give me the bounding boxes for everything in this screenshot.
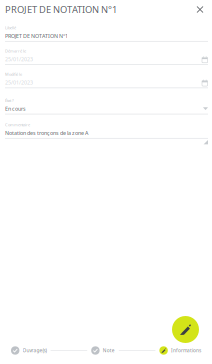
staticText: Note	[103, 347, 115, 354]
button[interactable]: Modifier	[172, 316, 199, 343]
staticText: Modifié le	[5, 71, 22, 77]
staticText: En cours	[5, 105, 26, 112]
staticText: PROJET DE NOTATION N°1	[5, 32, 68, 40]
button[interactable]: Note	[91, 346, 115, 355]
staticText: Démarré le	[5, 48, 26, 54]
staticText: Notation des tronçons de la zone A	[5, 129, 88, 137]
staticText: État ?	[5, 98, 14, 103]
staticText: Libellé	[5, 25, 16, 30]
staticText: Commentaire	[5, 122, 30, 127]
staticText: Ouvrage(s)	[23, 347, 47, 354]
button[interactable]: Ouvrage(s)	[11, 346, 47, 355]
button[interactable]: Informations	[159, 346, 201, 355]
staticText: 25/01/2023	[5, 79, 33, 86]
button[interactable]: Fermer	[193, 2, 207, 16]
staticText: 25/01/2023	[5, 56, 33, 63]
staticText: Informations	[171, 347, 201, 354]
staticText: PROJET DE NOTATION N°1	[5, 3, 117, 16]
